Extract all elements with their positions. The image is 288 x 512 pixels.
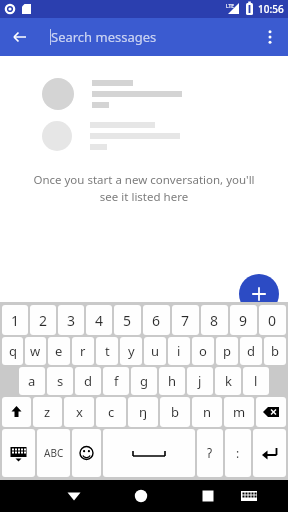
button[interactable]: k xyxy=(215,367,241,395)
staticText: LTE xyxy=(226,3,235,10)
button[interactable]: s xyxy=(47,367,73,395)
button[interactable]: Key xyxy=(253,429,286,477)
staticText: u xyxy=(151,342,160,360)
staticText: q xyxy=(9,342,17,360)
button[interactable]: Keyboard xyxy=(233,480,265,512)
staticText: ʔ xyxy=(207,445,213,461)
staticText: c xyxy=(108,403,115,421)
staticText: f xyxy=(114,372,119,390)
staticText: h xyxy=(168,372,177,390)
staticText: 3 xyxy=(67,311,76,330)
button[interactable]: Key xyxy=(72,429,101,477)
button[interactable]: j xyxy=(187,367,213,395)
button[interactable]: e xyxy=(48,337,70,365)
button[interactable]: d xyxy=(240,337,262,365)
button[interactable]: 8 xyxy=(201,305,228,335)
staticText: i xyxy=(177,342,181,360)
staticText: b xyxy=(271,342,279,360)
staticText: m xyxy=(233,403,246,421)
button[interactable]: More options xyxy=(256,23,284,51)
staticText: 1 xyxy=(11,311,20,330)
staticText: z xyxy=(44,403,51,421)
button[interactable]: t xyxy=(96,337,118,365)
button[interactable]: 4 xyxy=(86,305,112,335)
staticText: a xyxy=(28,372,36,390)
staticText: 6 xyxy=(152,311,161,330)
staticText: 8 xyxy=(210,311,219,330)
staticText: 4 xyxy=(95,311,104,330)
button[interactable]: ʔ xyxy=(197,429,223,477)
button[interactable]: 2 xyxy=(30,305,56,335)
button[interactable]: b xyxy=(264,337,286,365)
button[interactable]: c xyxy=(96,397,126,427)
button[interactable]: 5 xyxy=(114,305,141,335)
button[interactable]: r xyxy=(72,337,94,365)
staticText: 9 xyxy=(239,311,248,330)
button[interactable]: 3 xyxy=(58,305,84,335)
button[interactable]: Key xyxy=(2,397,31,427)
button[interactable]: Key xyxy=(2,429,35,477)
staticText: l xyxy=(254,372,258,390)
button[interactable]: 6 xyxy=(143,305,170,335)
staticText: d xyxy=(84,372,92,390)
staticText: e xyxy=(55,342,63,360)
button[interactable]: New conversation xyxy=(239,274,279,314)
staticText: 2 xyxy=(39,311,48,330)
button[interactable]: Back xyxy=(58,480,90,512)
staticText: s xyxy=(57,372,64,390)
button[interactable]: b xyxy=(160,397,190,427)
button[interactable]: 7 xyxy=(172,305,199,335)
button[interactable]: u xyxy=(144,337,166,365)
button[interactable]: d xyxy=(75,367,101,395)
button[interactable]: 1 xyxy=(2,305,28,335)
button[interactable]: ŋ xyxy=(128,397,158,427)
staticText: ŋ xyxy=(139,403,148,421)
button[interactable]: Back xyxy=(6,23,34,51)
staticText: 10:56 xyxy=(258,2,284,16)
staticText: k xyxy=(225,372,232,390)
staticText: x xyxy=(76,403,83,421)
button[interactable]: m xyxy=(224,397,254,427)
button[interactable]: 0 xyxy=(259,305,286,335)
staticText: r xyxy=(80,342,86,360)
button[interactable]: Recents xyxy=(192,480,224,512)
staticText: 5 xyxy=(123,311,132,330)
staticText: n xyxy=(203,403,212,421)
button[interactable]: i xyxy=(168,337,190,365)
staticText: Once you start a new conversation, you'l… xyxy=(33,172,255,204)
staticText: b xyxy=(171,403,179,421)
staticText: j xyxy=(198,372,202,390)
staticText: Search messages xyxy=(51,28,157,46)
button[interactable]: z xyxy=(33,397,62,427)
button[interactable]: y xyxy=(120,337,142,365)
button[interactable]: w xyxy=(25,337,46,365)
staticText: ABC xyxy=(44,446,64,460)
button[interactable]: f xyxy=(103,367,129,395)
staticText: t xyxy=(105,342,110,360)
button[interactable]: 9 xyxy=(230,305,257,335)
button[interactable]: n xyxy=(192,397,222,427)
button[interactable]: Home xyxy=(125,480,157,512)
staticText: y xyxy=(128,342,135,360)
button[interactable]: Key xyxy=(103,429,195,477)
button[interactable]: x xyxy=(64,397,94,427)
staticText: g xyxy=(140,372,148,390)
button[interactable]: q xyxy=(2,337,23,365)
staticText: w xyxy=(30,342,41,360)
button[interactable]: : xyxy=(225,429,251,477)
button[interactable]: o xyxy=(192,337,214,365)
staticText: d xyxy=(247,342,255,360)
button[interactable]: l xyxy=(243,367,269,395)
button[interactable]: ABC xyxy=(37,429,70,477)
staticText: o xyxy=(199,342,207,360)
button[interactable]: g xyxy=(131,367,157,395)
staticText: 7 xyxy=(181,311,190,330)
button[interactable]: p xyxy=(216,337,238,365)
staticText: p xyxy=(223,342,231,360)
staticText: 0 xyxy=(268,311,277,330)
button[interactable]: Key xyxy=(256,397,286,427)
button[interactable]: h xyxy=(159,367,185,395)
button[interactable]: a xyxy=(19,367,45,395)
staticText: : xyxy=(236,445,240,461)
button[interactable]: Search messages xyxy=(50,22,240,52)
